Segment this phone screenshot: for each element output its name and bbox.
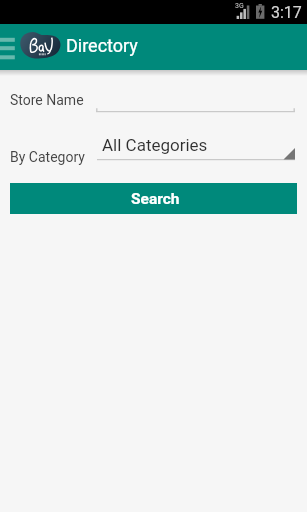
staticText: Store Name <box>10 92 84 108</box>
button[interactable]: All Categories <box>97 135 295 161</box>
staticText: All Categories <box>102 135 208 155</box>
staticText: Search <box>131 190 180 208</box>
staticText: 3G <box>235 2 244 10</box>
staticText: By Category <box>10 149 85 165</box>
button[interactable]: Search <box>10 183 297 214</box>
button[interactable]: Open navigation menu <box>0 33 18 61</box>
button[interactable] <box>96 98 295 114</box>
staticText: Directory <box>66 35 138 56</box>
staticText: 3:17 <box>271 3 302 22</box>
